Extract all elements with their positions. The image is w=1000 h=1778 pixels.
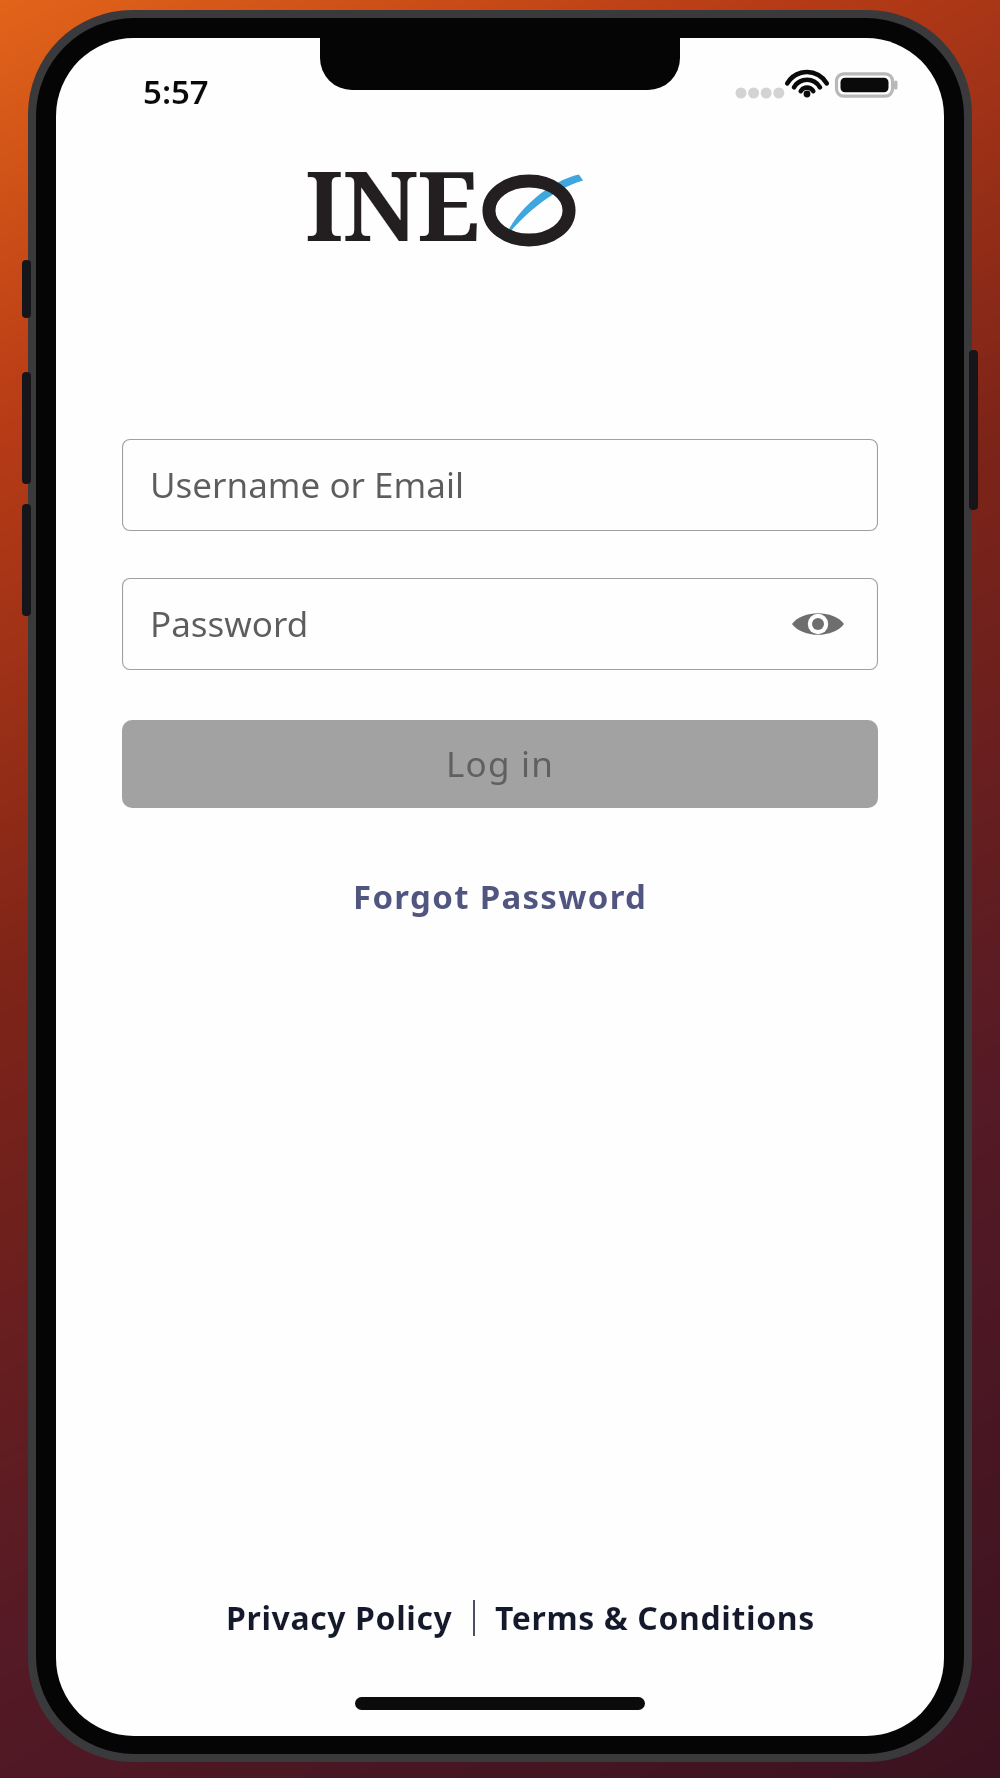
staticText: Username or Email [150,461,464,509]
button[interactable]: Privacy Policy [226,1596,453,1640]
staticText: INE [305,138,479,269]
staticText: Privacy Policy [226,1596,453,1640]
staticText: 5:57 [143,69,209,114]
button[interactable]: Username or Email [122,439,878,531]
staticText: Password [150,600,309,648]
staticText: Terms & Conditions [495,1596,815,1640]
staticText: Log in [446,740,555,788]
button[interactable] [122,578,878,670]
button[interactable]: Forgot Password [353,874,648,919]
button[interactable]: Show password [788,594,848,654]
staticText: Forgot Password [353,874,648,919]
button[interactable]: Terms & Conditions [495,1596,815,1640]
button[interactable]: Log in [122,720,878,808]
